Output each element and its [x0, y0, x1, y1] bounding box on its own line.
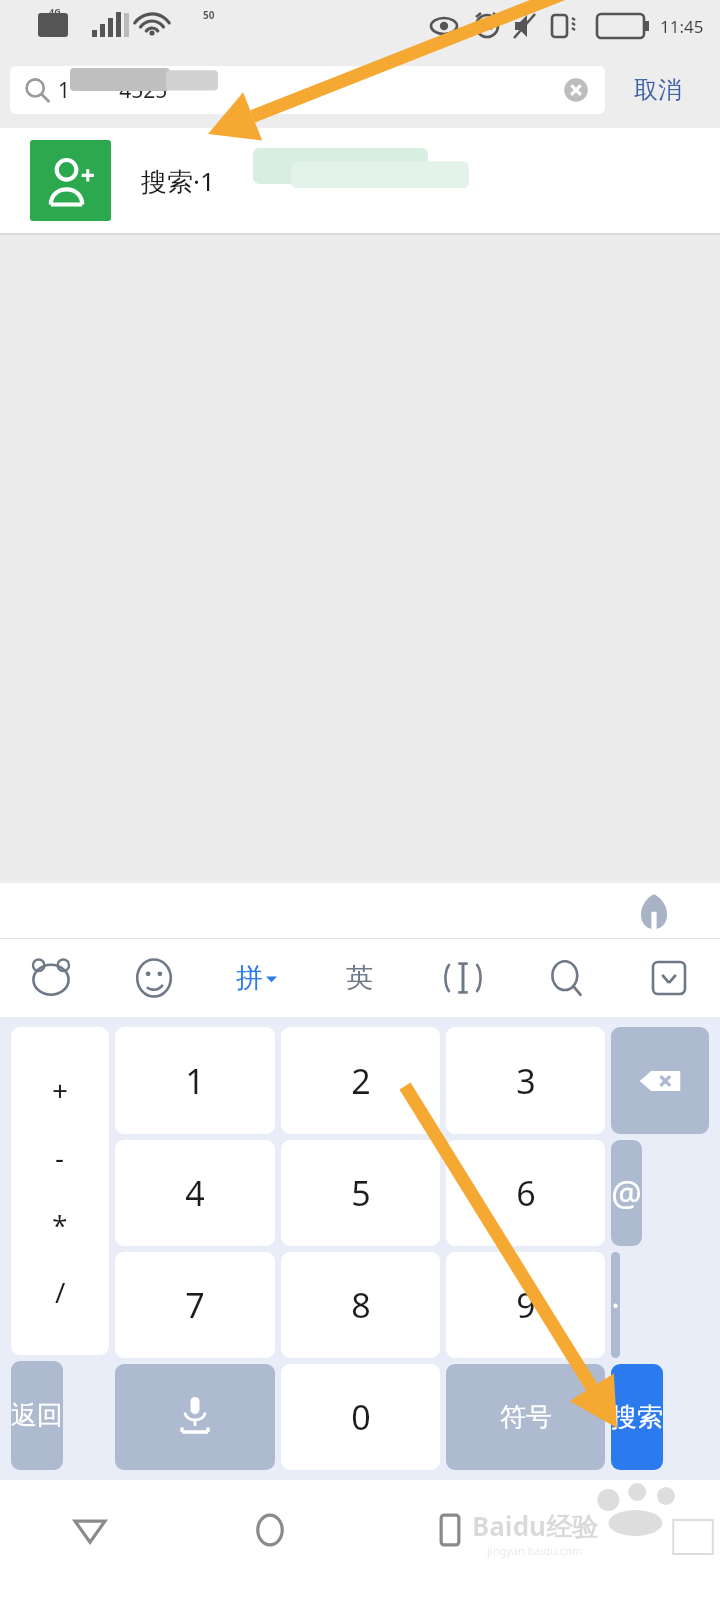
staticText: 50 — [203, 8, 215, 22]
staticText: 1 4525 — [58, 76, 168, 105]
button[interactable]: ying — [308, 939, 411, 1017]
button[interactable]: 3 — [446, 1027, 605, 1134]
staticText: · — [611, 1285, 620, 1326]
staticText: 9 — [516, 1282, 536, 1328]
staticText: + — [52, 1071, 69, 1109]
staticText: 搜索 — [611, 1401, 663, 1434]
staticText: 1 — [185, 1058, 205, 1104]
button[interactable]: 取消 — [605, 52, 710, 128]
button[interactable]: · — [611, 1252, 620, 1358]
button[interactable]: 4 — [115, 1140, 275, 1246]
button[interactable]: Voice input — [115, 1364, 275, 1470]
button[interactable]: 7 — [115, 1252, 275, 1358]
button[interactable]: @ — [611, 1140, 642, 1246]
button[interactable]: Home — [180, 1480, 360, 1580]
staticText: 5 — [351, 1170, 371, 1216]
staticText: 3 — [516, 1058, 536, 1104]
button[interactable]: 5 — [281, 1140, 440, 1246]
button[interactable]: 返回 — [11, 1361, 63, 1470]
button[interactable]: 符号 — [446, 1364, 605, 1470]
button[interactable]: Delete — [611, 1027, 709, 1134]
staticText: 8 — [351, 1282, 371, 1328]
button[interactable]: 6 — [446, 1140, 605, 1246]
button[interactable]: 1 4525 — [10, 66, 605, 114]
staticText: 4G — [49, 5, 61, 17]
staticText: / — [55, 1273, 66, 1311]
button[interactable]: search — [514, 939, 617, 1017]
button[interactable]: panda — [0, 939, 102, 1017]
staticText: @ — [611, 1170, 642, 1216]
button[interactable]: Back — [0, 1480, 180, 1580]
staticText: 4 — [185, 1170, 205, 1216]
staticText: 11:45 — [660, 15, 704, 38]
staticText: 拼 — [236, 961, 263, 995]
button[interactable]: pin — [205, 939, 308, 1017]
staticText: 英 — [346, 961, 373, 995]
staticText: Baidu经验 — [472, 1508, 598, 1544]
staticText: 符号 — [500, 1401, 552, 1434]
button[interactable]: down — [617, 939, 720, 1017]
button[interactable]: Recents — [360, 1480, 540, 1580]
staticText: 7 — [185, 1282, 205, 1328]
staticText: jingyan.baidu.com — [487, 1543, 583, 1558]
staticText: 取消 — [634, 75, 682, 105]
button[interactable]: 搜索·1 — [0, 128, 720, 233]
button[interactable]: 8 — [281, 1252, 440, 1358]
staticText: 0 — [351, 1394, 371, 1440]
button[interactable]: 1 — [115, 1027, 275, 1134]
button[interactable]: Clear — [561, 75, 591, 105]
button[interactable]: cursor — [411, 939, 514, 1017]
staticText: 搜索·1 — [141, 163, 215, 199]
staticText: * — [52, 1206, 68, 1244]
staticText: - — [55, 1138, 65, 1176]
staticText: 返回 — [11, 1399, 63, 1432]
button[interactable]: 0 — [281, 1364, 440, 1470]
button[interactable]: 2 — [281, 1027, 440, 1134]
button[interactable]: 9 — [446, 1252, 605, 1358]
button[interactable]: 搜索 — [611, 1364, 663, 1470]
button[interactable]: smiley — [102, 939, 205, 1017]
button[interactable]: Input method — [634, 891, 674, 931]
staticText: 2 — [351, 1058, 371, 1104]
button[interactable]: + — [11, 1027, 109, 1355]
staticText: 6 — [516, 1170, 536, 1216]
